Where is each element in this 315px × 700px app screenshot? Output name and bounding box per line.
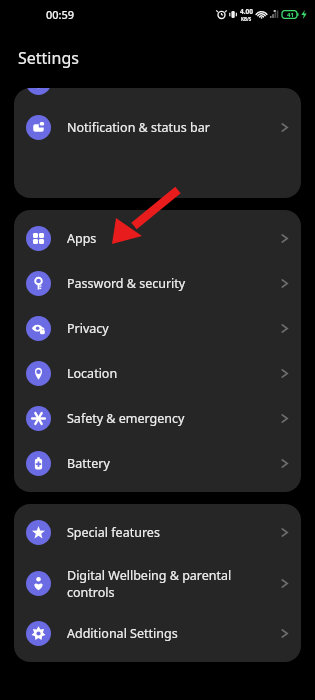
button[interactable]: Privacy (14, 306, 301, 351)
staticText: Additional Settings (67, 625, 281, 642)
staticText: Safety & emergency (67, 410, 281, 427)
staticText: Location (67, 365, 281, 382)
staticText: 00:59 (46, 7, 75, 22)
staticText: Password & security (67, 275, 281, 292)
button[interactable]: Battery (14, 441, 301, 486)
staticText: 41 (287, 11, 294, 19)
staticText: Privacy (67, 320, 281, 337)
staticText: Special features (67, 524, 281, 541)
staticText: KB/S (241, 16, 252, 22)
button[interactable]: Apps (14, 216, 301, 261)
button[interactable]: Additional Settings (14, 611, 301, 656)
button[interactable]: Special features (14, 510, 301, 555)
staticText: Digital Wellbeing & parental controls (67, 567, 281, 600)
button[interactable]: Safety & emergency (14, 396, 301, 441)
button[interactable]: Location (14, 351, 301, 396)
staticText: 4.00 (240, 7, 253, 16)
staticText: Battery (67, 455, 281, 472)
button[interactable]: Digital Wellbeing & parental controls (14, 555, 301, 611)
staticText: Notification & status bar (67, 119, 281, 136)
staticText: Settings (18, 47, 79, 69)
staticText: Apps (67, 230, 281, 247)
button[interactable]: Sound & vibration (14, 88, 301, 105)
button[interactable]: Notification & status bar (14, 105, 301, 150)
button[interactable]: Password & security (14, 261, 301, 306)
